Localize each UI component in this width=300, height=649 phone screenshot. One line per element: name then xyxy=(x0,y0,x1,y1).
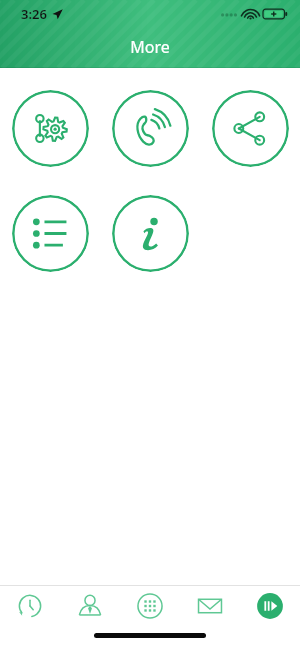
button[interactable]: Settings xyxy=(12,90,89,167)
button[interactable]: Info xyxy=(112,195,189,272)
button[interactable]: Call xyxy=(112,90,189,167)
staticText: 3:26 xyxy=(21,5,47,23)
button[interactable]: Play xyxy=(240,586,300,625)
staticText: More xyxy=(130,36,170,58)
button[interactable]: Share xyxy=(212,90,289,167)
button[interactable]: Recents xyxy=(0,586,60,625)
button[interactable]: List xyxy=(12,195,89,272)
button[interactable]: Contacts xyxy=(60,586,120,625)
button[interactable]: Messages xyxy=(180,586,240,625)
button[interactable]: Keypad xyxy=(120,586,180,625)
